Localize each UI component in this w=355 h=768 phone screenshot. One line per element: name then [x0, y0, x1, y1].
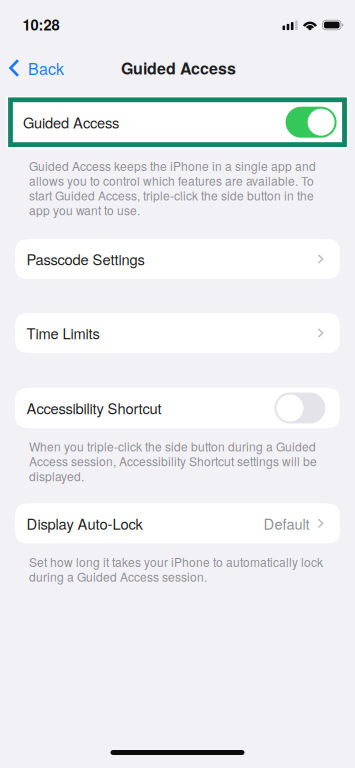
staticText: Default: [263, 513, 309, 534]
staticText: Accessibility Shortcut: [26, 397, 161, 418]
staticText: Time Limits: [26, 322, 99, 343]
button[interactable]: Guided Access: [0, 96, 355, 148]
button[interactable]: Display Auto-Lock: [15, 503, 340, 543]
staticText: Display Auto-Lock: [26, 513, 142, 534]
button[interactable]: Time Limits: [15, 313, 340, 353]
staticText: Guided Access keeps the iPhone in a sing…: [29, 158, 316, 217]
staticText: Back: [28, 56, 64, 79]
staticText: Set how long it takes your iPhone to aut…: [29, 554, 323, 584]
staticText: Guided Access: [121, 56, 236, 79]
staticText: Passcode Settings: [26, 248, 144, 269]
staticText: Guided Access: [23, 112, 119, 133]
staticText: 10:28: [22, 14, 59, 35]
button[interactable]: Accessibility Shortcut: [15, 388, 340, 428]
button[interactable]: Passcode Settings: [15, 239, 340, 279]
staticText: When you triple-click the side button du…: [29, 439, 317, 483]
button[interactable]: Back: [0, 46, 74, 86]
